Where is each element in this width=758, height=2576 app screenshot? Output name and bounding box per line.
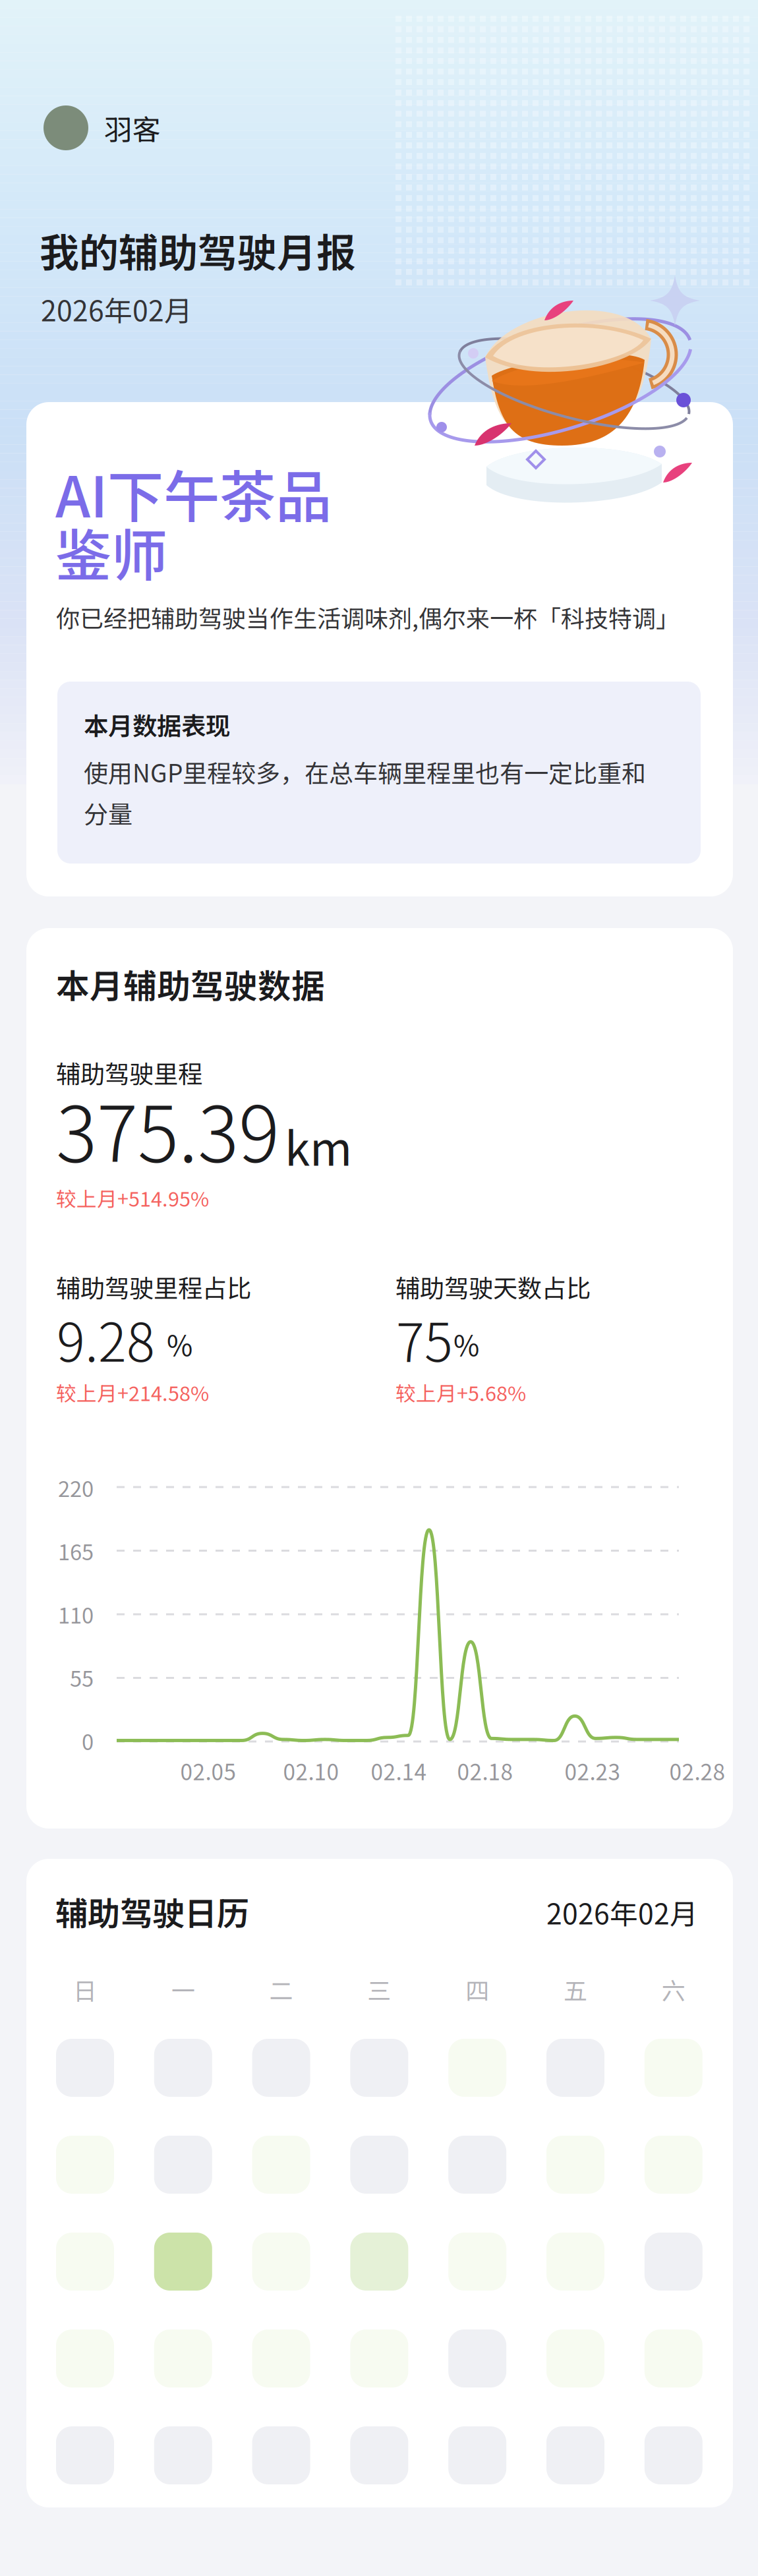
staticText: 较上月+5.68% (395, 1378, 526, 1407)
staticText: 55 (70, 1662, 94, 1693)
staticText: 六 (662, 1972, 685, 2007)
staticText: 五 (564, 1972, 587, 2007)
staticText: AI下午茶品 (55, 452, 332, 534)
staticText: 辅助驾驶天数占比 (395, 1269, 591, 1305)
staticText: 四 (465, 1972, 489, 2007)
staticText: 110 (58, 1598, 94, 1630)
staticText: 羽客 (104, 108, 161, 148)
staticText: km (285, 1113, 352, 1179)
staticText: 02.23 (565, 1755, 621, 1787)
staticText: 辅助驾驶里程 (56, 1055, 202, 1090)
staticText: 0 (82, 1725, 94, 1756)
staticText: % (167, 1324, 192, 1364)
staticText: 辅助驾驶里程占比 (56, 1269, 251, 1305)
staticText: 较上月+214.58% (56, 1378, 209, 1407)
staticText: 220 (58, 1472, 94, 1503)
staticText: 02.05 (180, 1755, 236, 1787)
staticText: 本月辅助驾驶数据 (56, 960, 325, 1008)
staticText: 使用NGP里程较多，在总车辆里程里也有一定比重和 (84, 754, 646, 789)
staticText: 9.28 (57, 1301, 155, 1377)
staticText: 三 (367, 1972, 391, 2007)
staticText: 一 (171, 1972, 195, 2007)
staticText: 日 (73, 1972, 97, 2007)
staticText: 75 (396, 1301, 453, 1377)
staticText: 本月数据表现 (84, 707, 230, 742)
staticText: 较上月+514.95% (56, 1183, 209, 1212)
staticText: 你已经把辅助驾驶当作生活调味剂,偶尔来一杯「科技特调」 (56, 600, 680, 634)
staticText: 02.28 (669, 1755, 725, 1787)
staticText: 鉴师 (55, 511, 167, 592)
staticText: 02.14 (371, 1755, 427, 1787)
staticText: 二 (269, 1972, 293, 2007)
staticText: 2026年02月 (546, 1892, 698, 1933)
staticText: 2026年02月 (41, 289, 192, 329)
staticText: 165 (58, 1535, 94, 1566)
staticText: 分量 (84, 795, 132, 830)
staticText: 02.10 (283, 1755, 339, 1787)
staticText: 我的辅助驾驶月报 (40, 221, 356, 279)
staticText: % (453, 1324, 479, 1364)
button[interactable]: 羽客 (44, 104, 161, 152)
staticText: 02.18 (457, 1755, 513, 1787)
staticText: 375.39 (56, 1073, 279, 1184)
staticText: 辅助驾驶日历 (55, 1888, 249, 1935)
